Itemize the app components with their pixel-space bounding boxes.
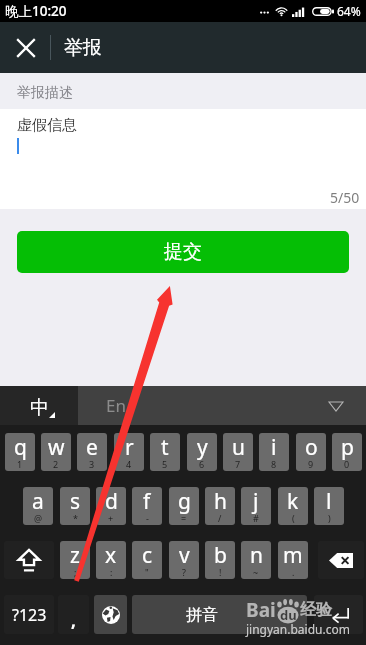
- button[interactable]: Shift: [4, 541, 54, 579]
- button[interactable]: o: [296, 433, 326, 471]
- button[interactable]: x: [96, 541, 126, 579]
- staticText: 64%: [337, 3, 361, 19]
- staticText: p: [341, 433, 354, 462]
- staticText: k: [287, 487, 299, 516]
- staticText: b: [214, 541, 227, 570]
- button[interactable]: u: [223, 433, 253, 471]
- staticText: 0: [344, 458, 350, 470]
- staticText: 8: [271, 458, 277, 470]
- staticText: 4: [126, 458, 132, 470]
- button[interactable]: 虚假信息: [0, 109, 366, 209]
- button[interactable]: w: [41, 433, 71, 471]
- staticText: l: [326, 487, 332, 516]
- staticText: 7: [235, 458, 241, 470]
- staticText: !: [219, 566, 222, 578]
- staticText: u: [232, 433, 245, 462]
- staticText: o: [305, 433, 318, 462]
- button[interactable]: Close: [0, 22, 51, 73]
- button[interactable]: j: [241, 487, 271, 525]
- staticText: 举报: [64, 36, 102, 60]
- button[interactable]: n: [241, 541, 271, 579]
- staticText: h: [214, 487, 227, 516]
- staticText: y: [197, 433, 208, 462]
- button[interactable]: p: [332, 433, 362, 471]
- button[interactable]: f: [132, 487, 162, 525]
- staticText: ,: [71, 609, 76, 632]
- button[interactable]: 中: [0, 386, 78, 425]
- button[interactable]: ,: [58, 595, 89, 634]
- staticText: d: [105, 487, 118, 516]
- button[interactable]: k: [278, 487, 308, 525]
- staticText: +: [108, 512, 114, 524]
- button[interactable]: h: [205, 487, 235, 525]
- staticText: 虚假信息: [17, 116, 77, 135]
- staticText: 晚上10:20: [5, 2, 67, 20]
- button[interactable]: 拼音: [132, 595, 307, 634]
- button[interactable]: Change language: [94, 595, 127, 634]
- button[interactable]: e: [77, 433, 107, 471]
- staticText: /: [218, 512, 222, 524]
- button[interactable]: En: [78, 386, 154, 425]
- staticText: 提交: [164, 240, 202, 264]
- staticText: du: [280, 606, 297, 624]
- staticText: .: [292, 566, 295, 578]
- staticText: 1: [17, 458, 23, 470]
- staticText: m: [283, 541, 303, 570]
- staticText: 中: [30, 396, 49, 420]
- staticText: 经验: [300, 600, 332, 620]
- button[interactable]: v: [169, 541, 199, 579]
- button[interactable]: l: [314, 487, 344, 525]
- staticText: @: [34, 512, 43, 524]
- button[interactable]: g: [169, 487, 199, 525]
- staticText: n: [250, 541, 263, 570]
- staticText: j: [253, 487, 259, 516]
- button[interactable]: t: [150, 433, 180, 471]
- staticText: a: [32, 487, 44, 516]
- staticText: 举报描述: [17, 84, 73, 102]
- staticText: 9: [308, 458, 314, 470]
- staticText: i: [271, 433, 277, 462]
- staticText: f: [143, 487, 151, 516]
- staticText: 5/50: [330, 188, 360, 207]
- button[interactable]: s: [60, 487, 90, 525]
- staticText: c: [142, 541, 153, 570]
- staticText: s: [70, 487, 81, 516]
- staticText: *: [73, 512, 78, 524]
- button[interactable]: r: [114, 433, 144, 471]
- staticText: x: [105, 541, 117, 570]
- button[interactable]: ?123: [4, 595, 54, 634]
- staticText: ): [328, 512, 331, 524]
- staticText: 5: [162, 458, 168, 470]
- staticText: 2: [53, 458, 59, 470]
- button[interactable]: 提交: [17, 231, 349, 273]
- button[interactable]: z: [60, 541, 90, 579]
- button[interactable]: Backspace: [318, 541, 364, 579]
- staticText: ": [145, 566, 149, 578]
- button[interactable]: Enter: [314, 595, 363, 634]
- staticText: 6: [199, 458, 205, 470]
- button[interactable]: m: [278, 541, 308, 579]
- staticText: (: [292, 512, 295, 524]
- staticText: t: [161, 433, 169, 462]
- staticText: v: [179, 541, 190, 570]
- staticText: #: [253, 512, 259, 524]
- button[interactable]: q: [5, 433, 35, 471]
- button[interactable]: i: [259, 433, 289, 471]
- button[interactable]: Hide keyboard: [324, 394, 348, 418]
- staticText: r: [125, 433, 134, 462]
- staticText: z: [70, 541, 80, 570]
- staticText: e: [86, 433, 98, 462]
- button[interactable]: b: [205, 541, 235, 579]
- staticText: ?123: [12, 604, 47, 626]
- staticText: g: [178, 487, 191, 516]
- staticText: w: [48, 433, 65, 462]
- button[interactable]: a: [23, 487, 53, 525]
- button[interactable]: y: [187, 433, 217, 471]
- button[interactable]: c: [132, 541, 162, 579]
- staticText: ~: [253, 566, 259, 578]
- staticText: ;: [74, 566, 77, 578]
- staticText: ?: [182, 566, 186, 578]
- staticText: Bai: [246, 597, 276, 623]
- button[interactable]: d: [96, 487, 126, 525]
- staticText: q: [14, 433, 27, 462]
